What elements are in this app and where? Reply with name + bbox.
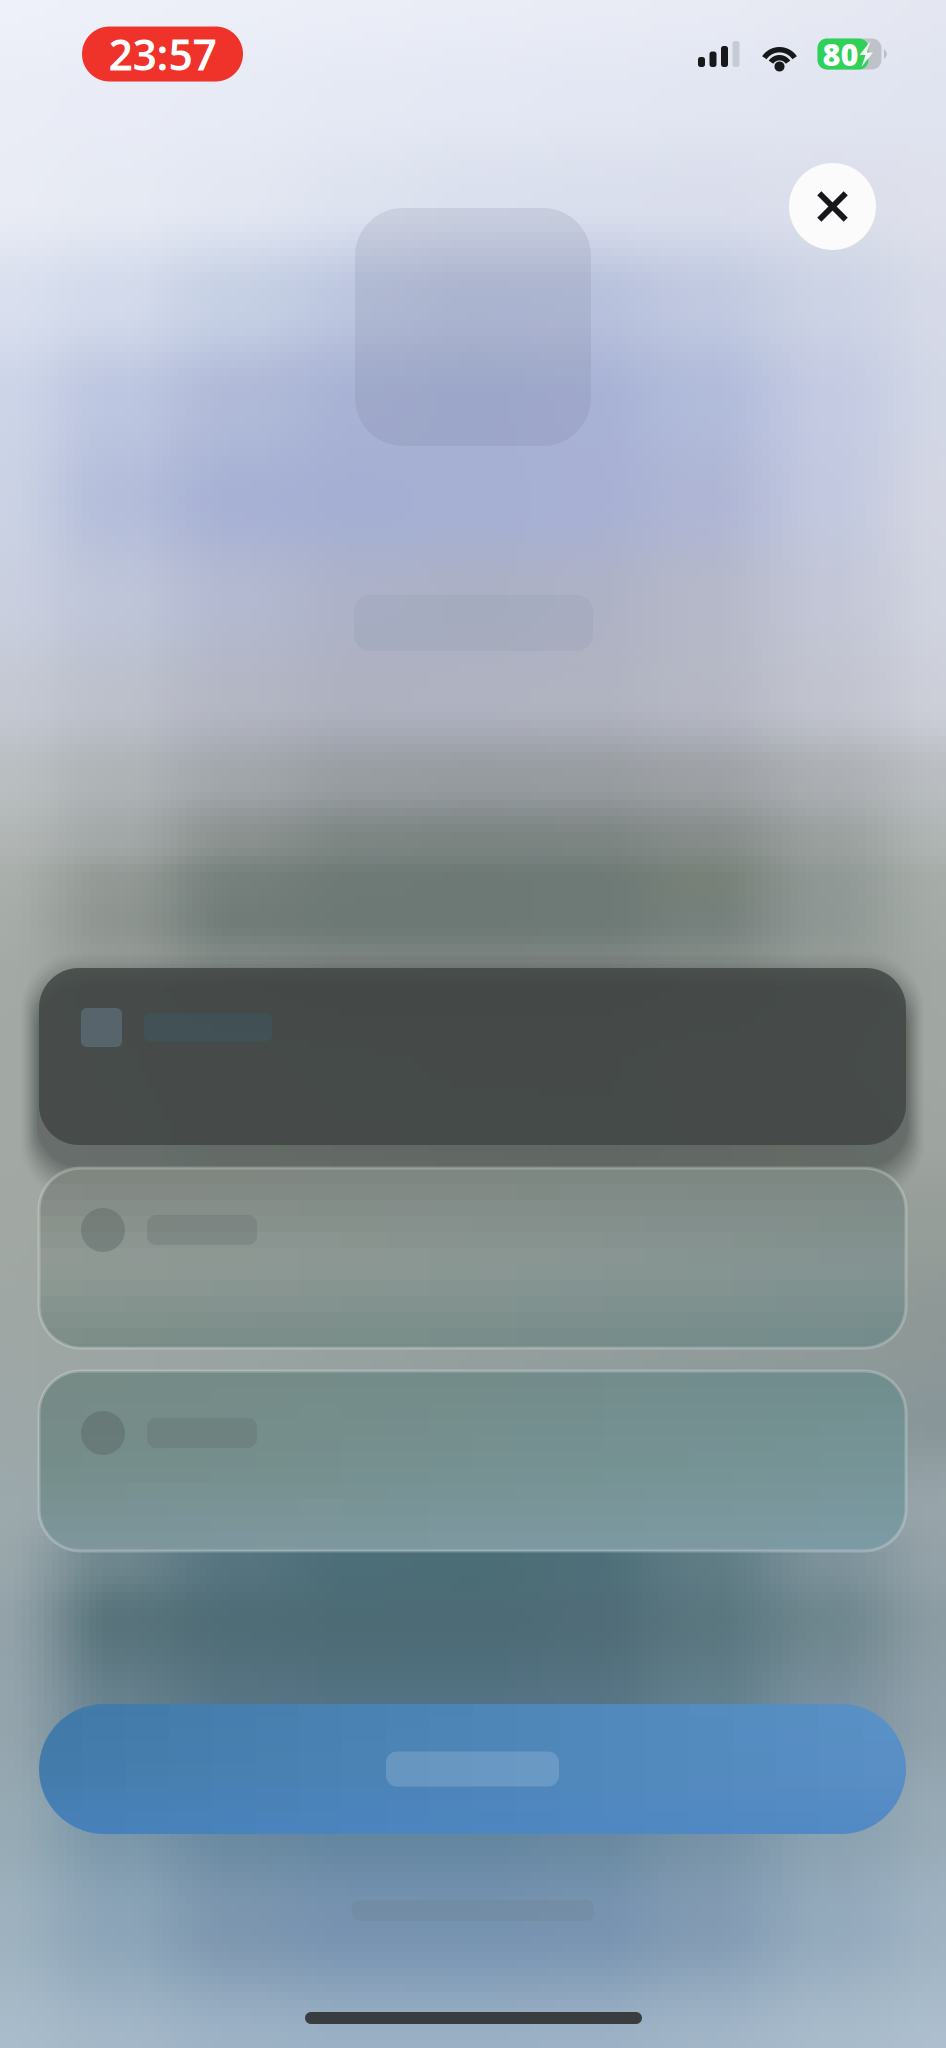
button[interactable]: Close — [789, 163, 876, 250]
button[interactable]: Choose account — [39, 1168, 906, 1348]
button[interactable]: Choose account — [39, 1371, 906, 1551]
button[interactable]: Signed-in account — [39, 968, 906, 1145]
staticText: 80 — [822, 34, 858, 74]
button[interactable]: Recording — [82, 26, 243, 81]
staticText: 23:57 — [108, 26, 216, 82]
button[interactable]: Continue — [39, 1704, 906, 1834]
